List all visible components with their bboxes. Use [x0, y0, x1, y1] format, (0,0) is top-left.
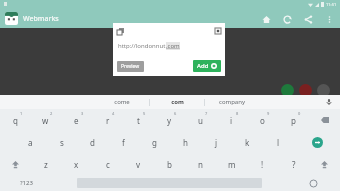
button[interactable]: Bookmark	[117, 28, 124, 35]
button[interactable]: Preview	[117, 61, 144, 72]
staticText: r	[106, 115, 110, 126]
button[interactable]: o	[247, 109, 278, 131]
button[interactable]: Shift	[0, 153, 30, 175]
staticText: ?123	[20, 179, 33, 187]
button[interactable]: a	[15, 131, 46, 153]
button[interactable]: w	[30, 109, 61, 131]
staticText: k	[245, 137, 250, 148]
button[interactable]: n	[185, 153, 216, 175]
button[interactable]: q	[0, 109, 30, 131]
button[interactable]: come	[95, 95, 149, 109]
staticText: w	[42, 115, 49, 126]
staticText: 8	[236, 111, 239, 116]
button[interactable]: !	[247, 153, 278, 175]
button[interactable]: b	[154, 153, 185, 175]
button[interactable]: Voice input	[318, 95, 340, 109]
staticText: company	[219, 98, 245, 106]
staticText: n	[198, 159, 203, 170]
staticText: 7	[205, 111, 208, 116]
button[interactable]: g	[139, 131, 170, 153]
staticText: d	[90, 137, 95, 148]
button[interactable]: f	[108, 131, 139, 153]
button[interactable]: m	[216, 153, 247, 175]
staticText: b	[167, 159, 172, 170]
button[interactable]: Close	[215, 28, 221, 34]
staticText: 9	[267, 111, 270, 116]
button[interactable]: company	[205, 95, 259, 109]
staticText: come	[114, 98, 130, 106]
button[interactable]: ?123	[0, 175, 53, 191]
staticText: Preview	[121, 63, 140, 70]
button[interactable]: u	[185, 109, 216, 131]
button[interactable]: Shift	[309, 153, 340, 175]
staticText: i	[230, 115, 233, 126]
staticText: o	[260, 115, 265, 126]
staticText: j	[215, 137, 218, 148]
staticText: 6	[174, 111, 177, 116]
staticText: e	[74, 115, 79, 126]
staticText: g	[152, 137, 157, 148]
staticText: u	[198, 115, 203, 126]
button[interactable]: s	[46, 131, 77, 153]
staticText: h	[183, 137, 188, 148]
button[interactable]: Refresh	[281, 13, 293, 25]
staticText: f	[122, 137, 125, 148]
button[interactable]: Add	[193, 60, 221, 72]
staticText: ?	[292, 159, 296, 170]
button[interactable]: p	[278, 109, 309, 131]
button[interactable]: Share	[302, 13, 314, 25]
button[interactable]: h	[170, 131, 201, 153]
button[interactable]: c	[92, 153, 123, 175]
staticText: c	[106, 159, 110, 170]
button[interactable]: k	[232, 131, 263, 153]
button[interactable]: y	[154, 109, 185, 131]
button[interactable]: v	[123, 153, 154, 175]
button[interactable]: t	[123, 109, 154, 131]
staticText: z	[44, 159, 48, 170]
button[interactable]: com	[150, 95, 204, 109]
staticText: 3	[81, 111, 84, 116]
button[interactable]: j	[201, 131, 232, 153]
staticText: com	[171, 98, 184, 106]
staticText: y	[167, 115, 172, 126]
button[interactable]: e	[61, 109, 92, 131]
staticText: a	[28, 137, 33, 148]
button[interactable]: x	[61, 153, 92, 175]
staticText: 5	[143, 111, 146, 116]
staticText: 1	[20, 111, 23, 116]
staticText: Add	[197, 62, 209, 70]
button[interactable]: http://londonnut	[118, 38, 220, 54]
staticText: .com	[166, 42, 180, 50]
staticText: v	[136, 159, 141, 170]
staticText: s	[60, 137, 64, 148]
button[interactable]: Home	[260, 13, 272, 25]
staticText: 0	[298, 111, 301, 116]
button[interactable]: d	[77, 131, 108, 153]
button[interactable]: Backspace	[309, 109, 340, 131]
staticText: x	[74, 159, 79, 170]
button[interactable]: ?	[278, 153, 309, 175]
staticText: !	[261, 159, 264, 170]
staticText: t	[137, 115, 140, 126]
staticText: Webmarks	[23, 14, 59, 24]
staticText: 4	[112, 111, 115, 116]
staticText: l	[277, 137, 280, 148]
button[interactable]: z	[30, 153, 61, 175]
staticText: 11:51	[326, 2, 337, 7]
button[interactable]: l	[263, 131, 294, 153]
button[interactable]: Go	[294, 131, 340, 153]
staticText: p	[291, 115, 296, 126]
button[interactable]: i	[216, 109, 247, 131]
button[interactable]: More options	[323, 13, 335, 25]
staticText: 2	[50, 111, 53, 116]
staticText: q	[13, 115, 18, 126]
button[interactable]: Emoji	[286, 175, 340, 191]
button[interactable]: r	[92, 109, 123, 131]
staticText: http://londonnut	[118, 42, 166, 50]
staticText: m	[228, 159, 236, 170]
